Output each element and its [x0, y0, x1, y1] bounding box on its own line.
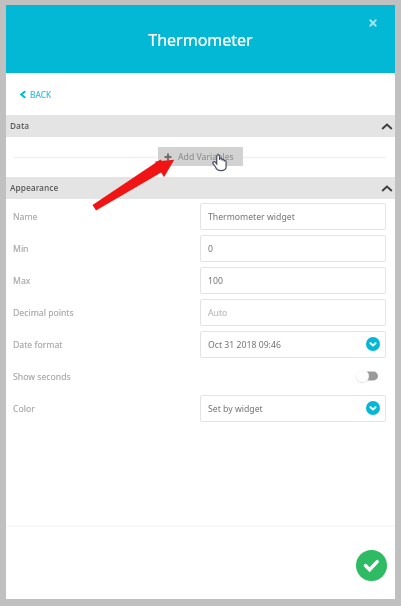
- staticText: Color: [13, 403, 35, 415]
- button[interactable]: Save: [356, 550, 387, 581]
- staticText: BACK: [30, 89, 52, 100]
- staticText: Thermometer: [148, 29, 253, 51]
- staticText: Max: [13, 275, 31, 287]
- staticText: 0: [208, 243, 213, 255]
- button[interactable]: Add Variables: [158, 147, 243, 166]
- button[interactable]: Data: [6, 115, 395, 137]
- staticText: Oct 31 2018 09:46: [208, 339, 281, 351]
- button[interactable]: BACK: [6, 73, 395, 115]
- staticText: Name: [13, 211, 38, 223]
- button[interactable]: 0: [200, 235, 386, 262]
- staticText: Min: [13, 243, 29, 255]
- staticText: Thermometer widget: [208, 211, 295, 223]
- staticText: Add Variables: [178, 151, 234, 163]
- button[interactable]: Auto: [200, 299, 386, 326]
- staticText: Decimal points: [13, 307, 74, 319]
- staticText: Appearance: [10, 182, 59, 193]
- staticText: Show seconds: [13, 371, 71, 383]
- staticText: Date format: [13, 339, 63, 351]
- button[interactable]: Appearance: [6, 177, 395, 199]
- button[interactable]: 100: [200, 267, 386, 294]
- button[interactable]: Show seconds toggle: [354, 367, 386, 385]
- staticText: Auto: [208, 307, 228, 319]
- staticText: Set by widget: [208, 403, 263, 415]
- staticText: Data: [10, 120, 30, 131]
- button[interactable]: Set by widget: [200, 395, 386, 422]
- button[interactable]: Oct 31 2018 09:46: [200, 331, 386, 358]
- button[interactable]: Thermometer widget: [200, 203, 386, 230]
- staticText: 100: [208, 275, 223, 287]
- button[interactable]: Close: [364, 14, 382, 32]
